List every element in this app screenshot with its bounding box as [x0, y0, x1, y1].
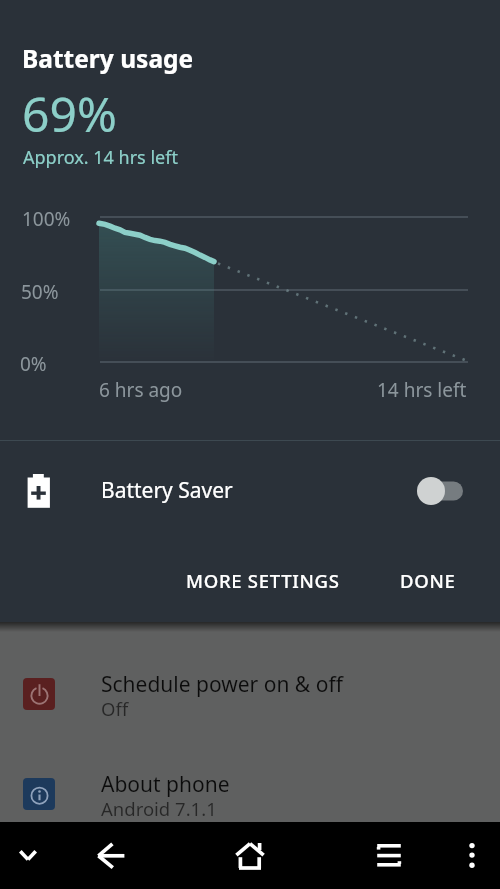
staticText: About phone — [101, 770, 230, 799]
button[interactable]: Battery Saver — [0, 441, 500, 541]
button[interactable]: Collapse — [0, 822, 56, 889]
staticText: Schedule power on & off — [101, 670, 343, 699]
button[interactable]: Home — [215, 822, 285, 889]
button[interactable]: More options — [443, 822, 500, 889]
staticText: DONE — [400, 568, 456, 593]
button[interactable]: Schedule power on & off — [0, 657, 500, 757]
button[interactable]: MORE SETTINGS — [170, 556, 356, 605]
staticText: 50% — [21, 279, 59, 305]
button[interactable]: DONE — [384, 556, 472, 605]
staticText: MORE SETTINGS — [186, 568, 340, 593]
staticText: 100% — [22, 206, 71, 232]
staticText: Battery Saver — [101, 476, 233, 505]
staticText: 0% — [20, 351, 47, 377]
staticText: Battery usage — [22, 42, 194, 75]
button[interactable]: About phone — [0, 757, 500, 857]
button[interactable]: Recent apps — [355, 822, 423, 889]
button[interactable]: Battery Saver toggle — [412, 468, 472, 514]
staticText: Off — [101, 696, 129, 721]
staticText: 14 hrs left — [377, 377, 467, 403]
staticText: Android 7.1.1 — [101, 796, 217, 821]
staticText: 69% — [22, 81, 117, 146]
staticText: Approx. 14 hrs left — [23, 145, 178, 170]
staticText: 6 hrs ago — [99, 377, 183, 403]
button[interactable]: Back — [77, 822, 145, 889]
